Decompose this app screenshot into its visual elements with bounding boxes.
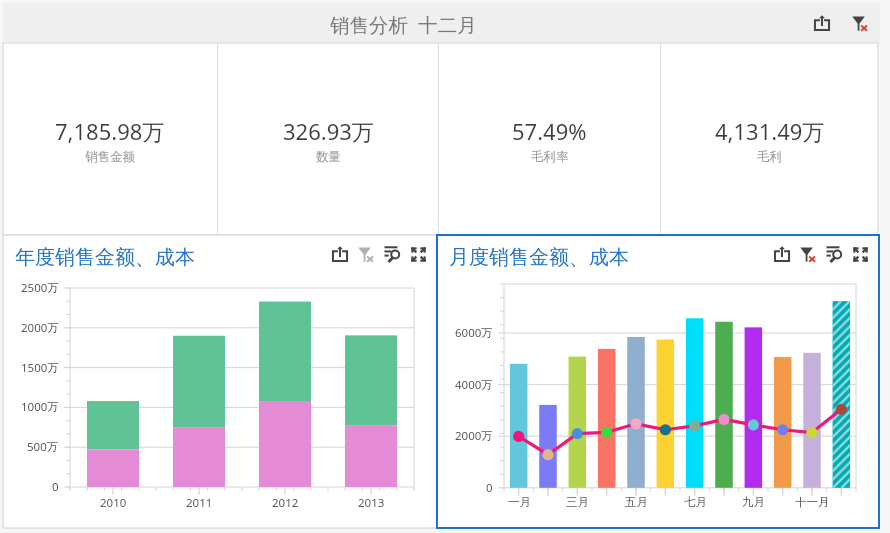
button[interactable]: Share	[803, 4, 841, 42]
staticText: 九月	[742, 495, 765, 509]
button[interactable]: 326.93万	[218, 43, 438, 235]
staticText: 2012	[272, 495, 299, 511]
staticText: 2010	[100, 495, 127, 511]
staticText: 1000万	[21, 399, 59, 415]
button[interactable]: 57.49%	[439, 43, 660, 235]
staticText: 2000万	[455, 428, 493, 444]
staticText: 五月	[625, 495, 648, 509]
button[interactable]: 4,131.49万	[661, 43, 878, 235]
staticText: 年度销售金额、成本	[15, 245, 195, 270]
button[interactable]: Details	[821, 241, 847, 267]
staticText: 1500万	[21, 360, 59, 376]
staticText: 销售金额	[85, 149, 135, 165]
button[interactable]: Expand	[847, 241, 873, 267]
staticText: 一月	[508, 495, 531, 509]
staticText: 2500万	[21, 280, 59, 296]
button[interactable]: Share	[769, 241, 795, 267]
button[interactable]: Details	[379, 241, 405, 267]
staticText: 2013	[358, 495, 385, 511]
button[interactable]: Expand	[405, 241, 431, 267]
button[interactable]: Share	[327, 241, 353, 267]
button[interactable]: 7,185.98万	[3, 43, 217, 235]
staticText: 十一月	[795, 495, 830, 509]
staticText: 销售分析 十二月	[330, 11, 477, 38]
staticText: 2000万	[21, 320, 59, 336]
staticText: 57.49%	[512, 116, 587, 146]
staticText: 0	[52, 479, 59, 495]
staticText: 500万	[27, 439, 59, 455]
button[interactable]: Clear filter	[353, 241, 379, 267]
button[interactable]: Clear filter	[795, 241, 821, 267]
staticText: 毛利率	[531, 149, 569, 165]
staticText: 数量	[316, 149, 341, 165]
staticText: 2011	[186, 495, 213, 511]
staticText: 毛利	[757, 149, 782, 165]
button[interactable]: Clear filter	[841, 4, 879, 42]
staticText: 七月	[684, 495, 707, 509]
staticText: 4000万	[455, 377, 493, 393]
staticText: 三月	[566, 495, 589, 509]
staticText: 7,185.98万	[55, 116, 165, 146]
staticText: 326.93万	[283, 116, 374, 146]
staticText: 0	[486, 480, 493, 496]
staticText: 6000万	[455, 325, 493, 341]
staticText: 月度销售金额、成本	[449, 245, 629, 270]
staticText: 4,131.49万	[715, 116, 825, 146]
